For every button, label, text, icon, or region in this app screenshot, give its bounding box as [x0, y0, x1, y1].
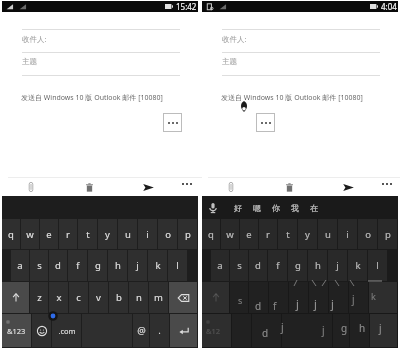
button[interactable]: j	[328, 250, 347, 281]
button[interactable]: a	[11, 250, 29, 281]
button[interactable]: .	[150, 314, 169, 347]
button[interactable]: n	[129, 282, 148, 313]
button[interactable]: h	[108, 250, 127, 281]
button[interactable]: Delete	[60, 178, 119, 196]
button[interactable]: s	[30, 250, 48, 281]
button[interactable]	[249, 282, 268, 313]
button[interactable]: w	[221, 219, 239, 249]
button[interactable]: Emoji	[32, 314, 51, 347]
button[interactable]: 我	[285, 196, 304, 219]
button[interactable]: Backspace	[169, 282, 197, 313]
button[interactable]: p	[178, 219, 197, 249]
button[interactable]: 在	[304, 196, 323, 219]
button[interactable]: 好	[228, 196, 247, 219]
button[interactable]: More options	[256, 113, 275, 132]
staticText: p	[185, 228, 191, 241]
button[interactable]	[252, 314, 281, 347]
button[interactable]	[309, 282, 328, 313]
button[interactable]: Attach	[2, 178, 60, 196]
button[interactable]: d	[249, 250, 267, 281]
staticText: 好	[234, 203, 242, 213]
button[interactable]: More	[176, 178, 198, 196]
button[interactable]: Shift	[2, 282, 29, 313]
button[interactable]	[329, 282, 348, 313]
button[interactable]: x	[49, 282, 68, 313]
button[interactable]	[350, 314, 369, 347]
button[interactable]: d	[49, 250, 67, 281]
button[interactable]	[230, 282, 248, 313]
button[interactable]: k	[148, 250, 167, 281]
staticText: h	[359, 321, 366, 335]
button[interactable]: Send	[319, 178, 378, 196]
button[interactable]	[349, 282, 368, 313]
button[interactable]: o	[358, 219, 377, 249]
staticText: 我	[291, 203, 299, 213]
button[interactable]: Shift	[202, 282, 229, 313]
button[interactable]: p	[378, 219, 397, 249]
button[interactable]: t	[78, 219, 97, 249]
staticText: k	[355, 259, 361, 272]
button[interactable]: l	[368, 250, 387, 281]
button[interactable]	[333, 314, 349, 347]
button[interactable]: q	[202, 219, 220, 249]
button[interactable]: 你	[266, 196, 285, 219]
button[interactable]: Send	[119, 178, 178, 196]
button[interactable]: g	[88, 250, 107, 281]
button[interactable]: r	[59, 219, 77, 249]
button[interactable]: Voice input	[207, 198, 219, 218]
button[interactable]: More	[376, 178, 398, 196]
button[interactable]: c	[69, 282, 88, 313]
button[interactable]: .com	[52, 314, 81, 347]
button[interactable]: Enter	[370, 314, 397, 347]
button[interactable]: g	[288, 250, 307, 281]
button[interactable]: i	[338, 219, 357, 249]
button[interactable]: i	[138, 219, 157, 249]
staticText: g	[95, 259, 101, 272]
button[interactable]: l	[168, 250, 187, 281]
button[interactable]: j	[128, 250, 147, 281]
staticText: j	[336, 259, 339, 272]
button[interactable]	[289, 282, 308, 313]
button[interactable]: z	[30, 282, 48, 313]
button[interactable]: b	[109, 282, 128, 313]
button[interactable]: Backspace	[369, 282, 397, 313]
button[interactable]: k	[348, 250, 367, 281]
button[interactable]	[282, 314, 332, 347]
button[interactable]: Attach	[202, 178, 260, 196]
button[interactable]: @	[133, 314, 149, 347]
staticText: r	[66, 228, 70, 241]
button[interactable]: f	[268, 250, 287, 281]
button[interactable]: h	[308, 250, 327, 281]
button[interactable]: w	[21, 219, 39, 249]
button[interactable]: r	[259, 219, 277, 249]
button[interactable]: t	[278, 219, 297, 249]
button[interactable]: f	[68, 250, 87, 281]
button[interactable]: y	[298, 219, 317, 249]
button[interactable]: Delete	[260, 178, 319, 196]
button[interactable]: s	[230, 250, 248, 281]
button[interactable]: y	[98, 219, 117, 249]
button[interactable]: More options	[163, 113, 182, 132]
button[interactable]: v	[89, 282, 108, 313]
button[interactable]: Enter	[170, 314, 197, 347]
button[interactable]: &12	[202, 314, 231, 347]
button[interactable]: q	[2, 219, 20, 249]
button[interactable]: u	[318, 219, 337, 249]
staticText: j	[331, 296, 334, 311]
staticText: w	[26, 228, 34, 241]
staticText: l	[376, 259, 379, 272]
staticText: z	[37, 291, 42, 304]
button[interactable]	[269, 282, 288, 313]
button[interactable]: e	[240, 219, 258, 249]
button[interactable]: 嗯	[247, 196, 266, 219]
button[interactable]: a	[211, 250, 229, 281]
staticText: s	[37, 259, 42, 272]
button[interactable]: o	[158, 219, 177, 249]
button[interactable]: u	[118, 219, 137, 249]
staticText: i	[346, 228, 349, 241]
button[interactable]: m	[149, 282, 168, 313]
button[interactable]: &123	[2, 314, 31, 347]
button[interactable]: e	[40, 219, 58, 249]
